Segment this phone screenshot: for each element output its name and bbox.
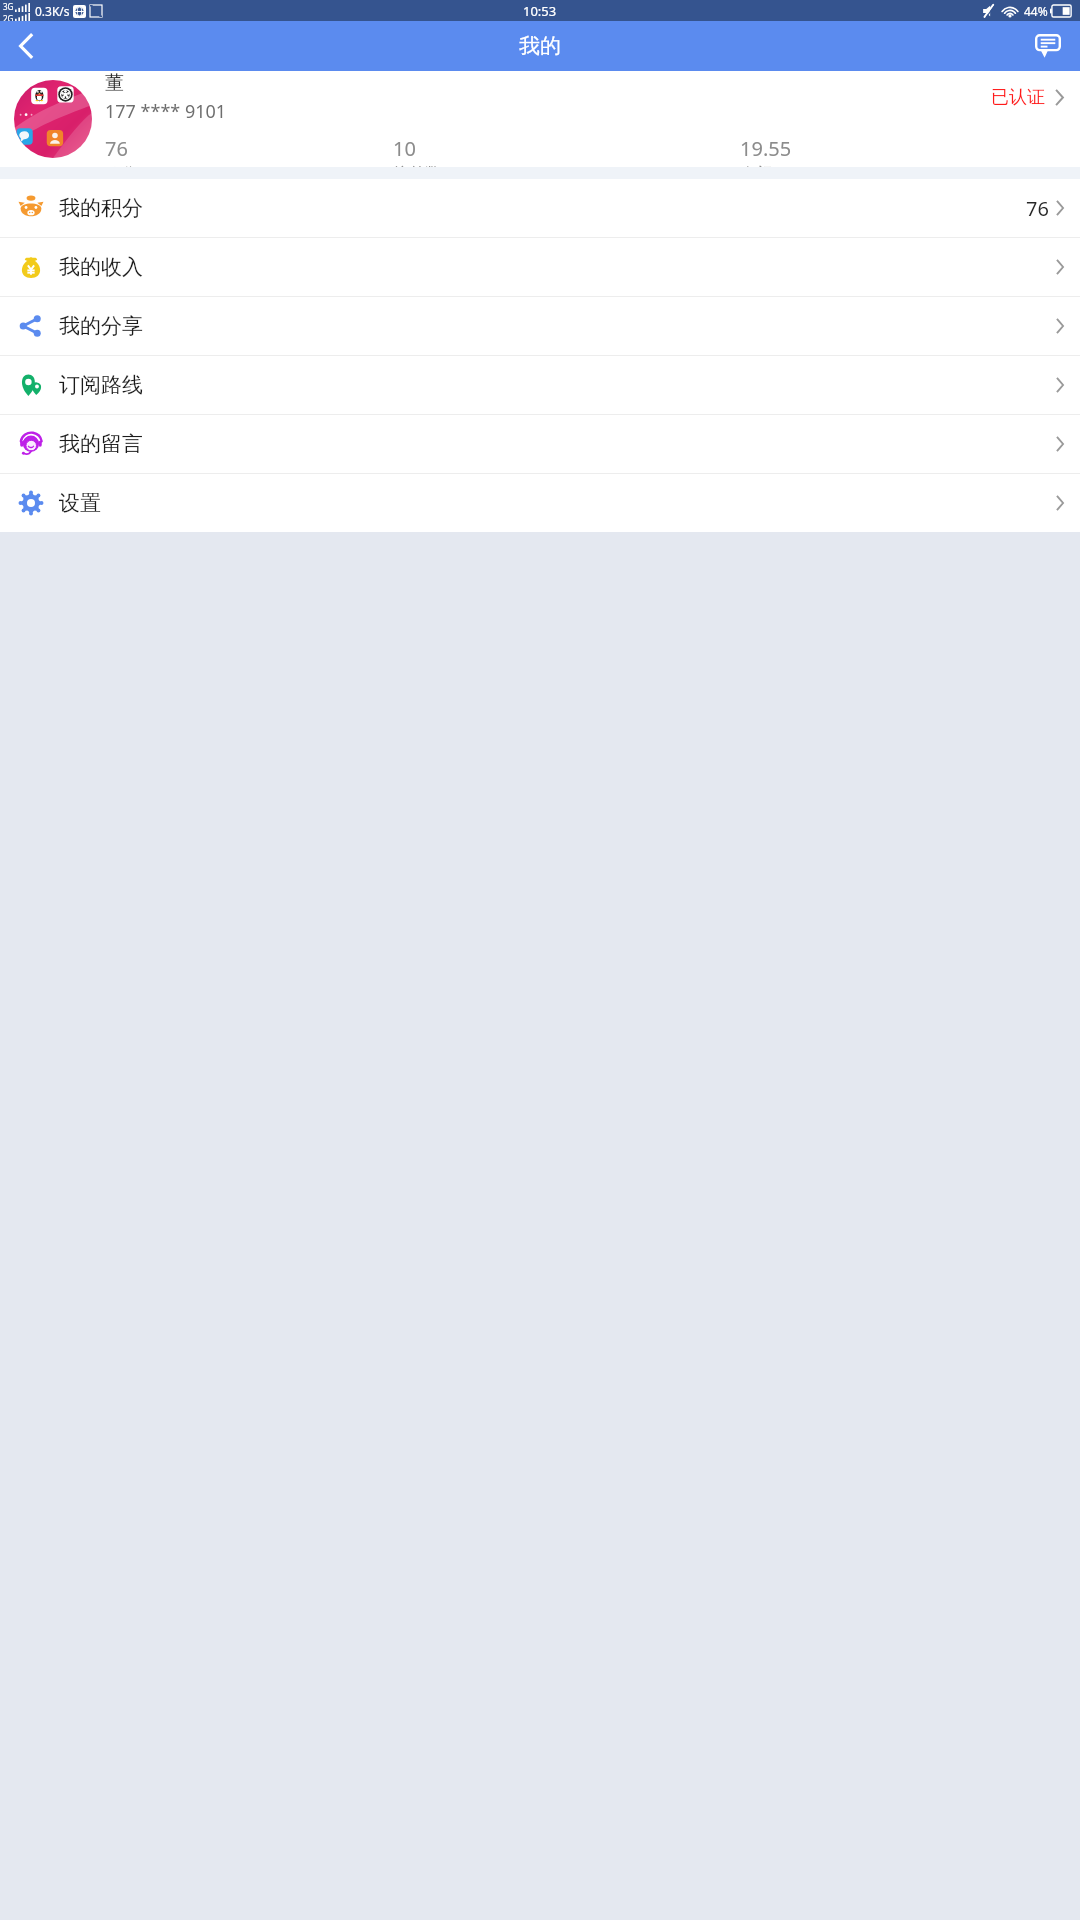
staticText: 订阅路线 (59, 372, 143, 398)
staticText: 44% (1024, 3, 1048, 19)
button[interactable]: 我的分享 (0, 297, 1080, 355)
staticText: 已认证 (991, 86, 1045, 109)
staticText: 我的收入 (59, 254, 143, 280)
staticText: 0.3K/s (35, 3, 70, 19)
staticText: 我的留言 (59, 431, 143, 457)
staticText: 余额 (740, 164, 772, 167)
staticText: 2G (3, 13, 14, 21)
staticText: 积分 (105, 164, 137, 167)
button[interactable]: Messages (1026, 24, 1070, 68)
staticText: 76 (1026, 195, 1049, 222)
staticText: 设置 (59, 490, 101, 516)
staticText: 10:53 (523, 2, 557, 20)
button[interactable]: 我的积分 (0, 179, 1080, 237)
staticText: 177 **** 9101 (105, 99, 227, 124)
button[interactable]: Back (0, 21, 52, 71)
button[interactable]: 设置 (0, 474, 1080, 532)
staticText: 19.55 (740, 135, 792, 162)
button[interactable]: 我的留言 (0, 415, 1080, 473)
staticText: 我的分享 (59, 313, 143, 339)
staticText: 董 (105, 71, 124, 95)
staticText: 3G (3, 1, 14, 12)
button[interactable]: 我的收入 (0, 238, 1080, 296)
staticText: 接单数 (393, 164, 441, 167)
staticText: 我的积分 (59, 195, 143, 221)
staticText: 我的 (519, 33, 561, 59)
staticText: 10 (393, 135, 416, 162)
button[interactable]: 董 (0, 71, 1080, 167)
staticText: 76 (105, 135, 128, 162)
button[interactable]: 订阅路线 (0, 356, 1080, 414)
